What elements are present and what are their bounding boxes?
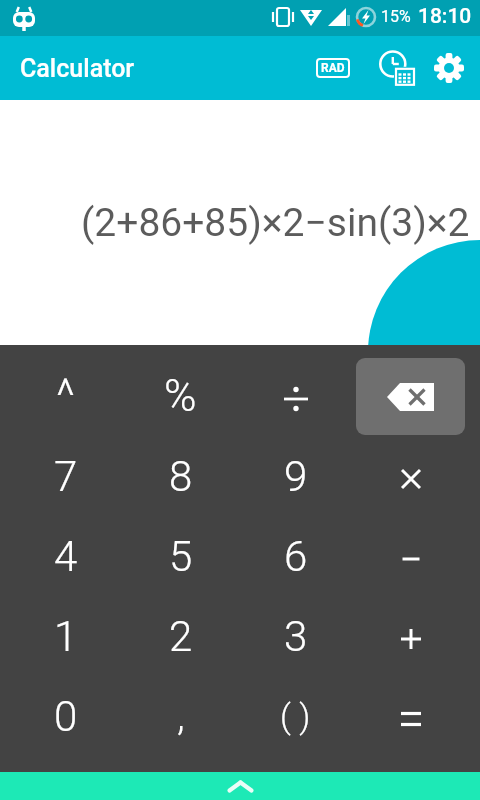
staticText: ( ): [280, 696, 311, 736]
button[interactable]: 0: [8, 676, 123, 756]
button[interactable]: [238, 356, 353, 436]
staticText: Calculator: [20, 54, 135, 83]
staticText: ,: [177, 693, 185, 740]
staticText: 3: [284, 612, 308, 661]
button[interactable]: [353, 516, 468, 596]
button[interactable]: [353, 436, 468, 516]
button[interactable]: [432, 51, 466, 85]
button[interactable]: [0, 772, 480, 800]
button[interactable]: 7: [8, 436, 123, 516]
button[interactable]: ( ): [238, 676, 353, 756]
staticText: 5: [169, 532, 193, 581]
button[interactable]: [353, 596, 468, 676]
button[interactable]: 4: [8, 516, 123, 596]
button[interactable]: 1: [8, 596, 123, 676]
staticText: 1: [54, 612, 78, 661]
staticText: 9: [284, 452, 308, 501]
button[interactable]: %: [123, 356, 238, 436]
staticText: ^: [56, 369, 76, 423]
button[interactable]: ^: [8, 356, 123, 436]
button[interactable]: [353, 676, 468, 756]
button[interactable]: 8: [123, 436, 238, 516]
button[interactable]: 6: [238, 516, 353, 596]
staticText: %: [164, 370, 197, 422]
button[interactable]: 9: [238, 436, 353, 516]
button[interactable]: [376, 48, 416, 88]
staticText: 7: [54, 452, 78, 501]
staticText: 18:10: [418, 4, 472, 29]
staticText: 8: [169, 452, 193, 501]
staticText: 6: [284, 532, 308, 581]
staticText: 15%: [381, 7, 411, 26]
staticText: 2: [169, 612, 193, 661]
button[interactable]: [356, 358, 465, 435]
staticText: 4: [54, 532, 78, 581]
button[interactable]: RAD: [321, 61, 345, 75]
button[interactable]: ,: [123, 676, 238, 756]
staticText: 0: [54, 692, 78, 741]
staticText: RAD: [321, 61, 345, 75]
staticText: (2+86+85)×2−sin(3)×2: [81, 200, 470, 246]
button[interactable]: 5: [123, 516, 238, 596]
button[interactable]: 3: [238, 596, 353, 676]
button[interactable]: 2: [123, 596, 238, 676]
